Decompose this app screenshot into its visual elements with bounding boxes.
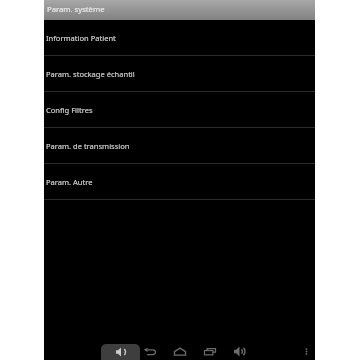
button[interactable]: Volume up — [231, 343, 247, 359]
staticText: Param. de transmission — [46, 141, 130, 151]
staticText: Information Patient — [46, 33, 116, 43]
staticText: Param. Autre — [46, 177, 93, 187]
staticText: Config Filtres — [46, 105, 93, 115]
button[interactable]: Information Patient — [44, 20, 315, 55]
button[interactable]: Volume down — [101, 344, 140, 360]
button[interactable]: Home — [172, 343, 188, 359]
button[interactable]: Config Filtres — [44, 92, 315, 127]
button[interactable]: Param. Autre — [44, 164, 315, 199]
button[interactable]: More options — [298, 343, 314, 359]
button[interactable]: Recents — [202, 343, 218, 359]
button[interactable]: Param. de transmission — [44, 128, 315, 163]
staticText: Param. système — [47, 4, 105, 14]
staticText: Param. stockage échantil — [46, 69, 135, 79]
button[interactable]: Param. stockage échantil — [44, 56, 315, 91]
button[interactable]: Back — [142, 343, 158, 359]
